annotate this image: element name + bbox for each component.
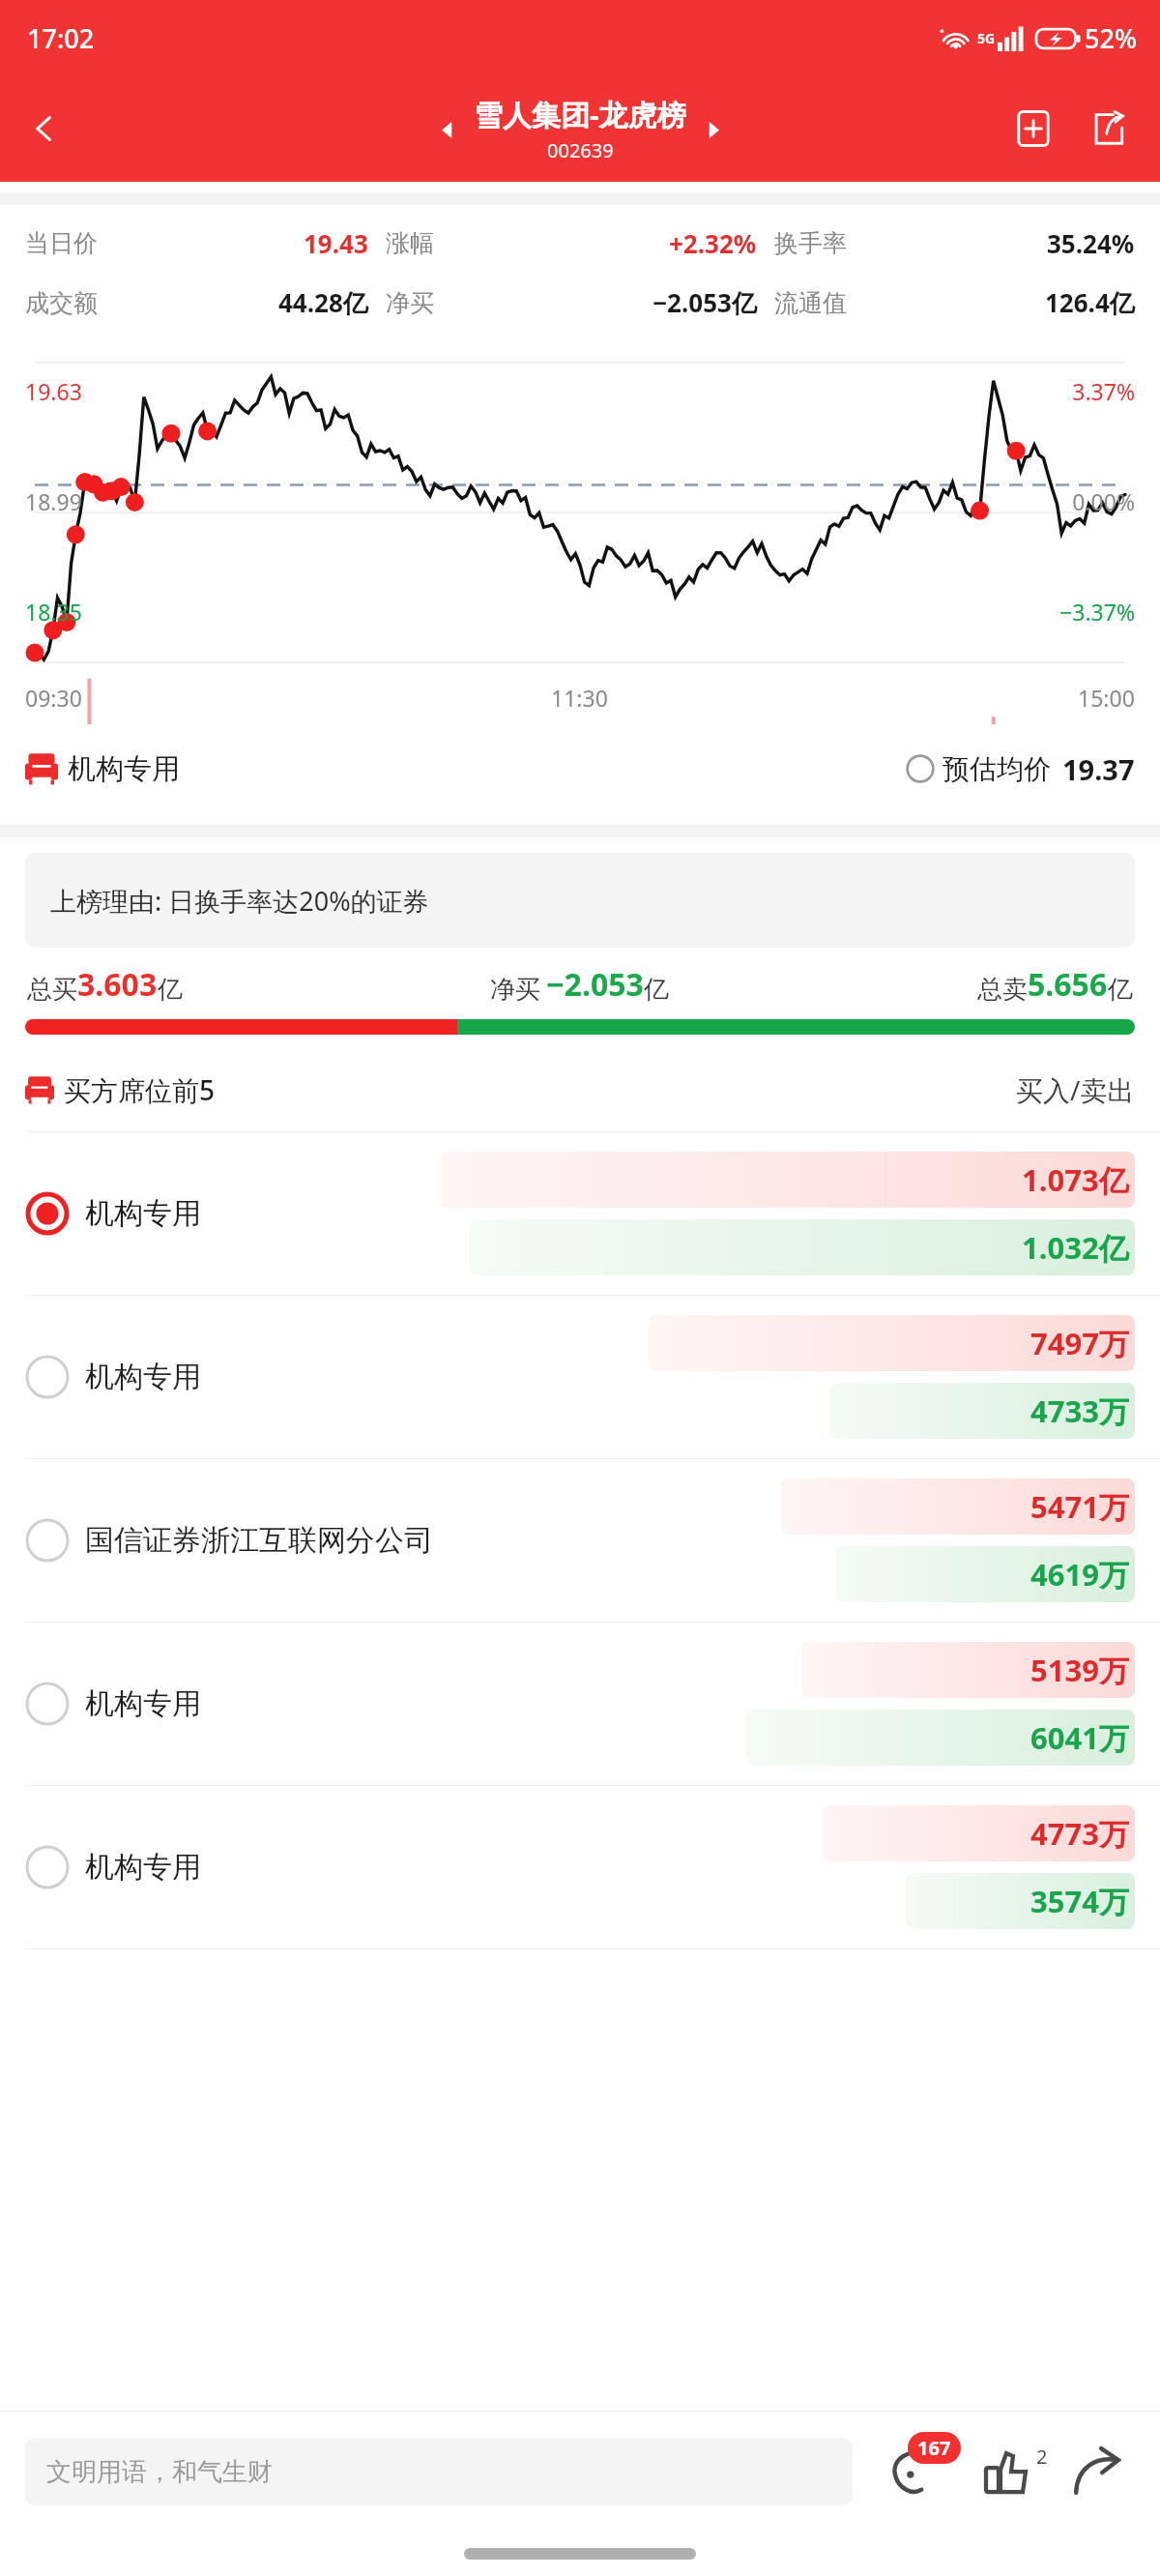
- staticText: 净买: [490, 974, 540, 1006]
- staticText: 1.073亿: [1022, 1159, 1129, 1200]
- staticText: 机构专用: [85, 1195, 201, 1232]
- staticText: 机构专用: [85, 1359, 201, 1395]
- staticText: 3.603: [77, 963, 158, 1006]
- staticText: −2.053: [546, 963, 644, 1006]
- button[interactable]: Share: [1079, 99, 1139, 159]
- staticText: 净买: [386, 288, 434, 318]
- staticText: 167: [917, 2435, 951, 2461]
- button[interactable]: Share: [1059, 2434, 1135, 2509]
- staticText: +2.32%: [669, 226, 757, 260]
- staticText: 文明用语，和气生财: [46, 2456, 273, 2488]
- staticText: 0.00%: [1072, 486, 1135, 516]
- staticText: 17:02: [27, 20, 95, 56]
- staticText: 5471万: [1030, 1486, 1129, 1527]
- staticText: 涨幅: [386, 228, 434, 258]
- button[interactable]: 机构专用: [0, 1132, 1160, 1295]
- staticText: 19.63: [25, 376, 82, 406]
- staticText: 4733万: [1030, 1390, 1129, 1431]
- staticText: 2: [1036, 2444, 1048, 2470]
- button[interactable]: 机构专用: [0, 1786, 1160, 1948]
- staticText: 上榜理由: 日换手率达20%的证券: [50, 883, 429, 919]
- staticText: 亿: [644, 974, 669, 1006]
- staticText: 002639: [547, 137, 614, 163]
- staticText: 换手率: [774, 228, 847, 258]
- button[interactable]: 文明用语，和气生财: [25, 2438, 853, 2505]
- staticText: 亿: [1108, 974, 1133, 1006]
- staticText: −3.37%: [1059, 597, 1135, 627]
- button[interactable]: 机构专用: [0, 1296, 1160, 1458]
- staticText: 126.4亿: [1045, 285, 1135, 320]
- staticText: 44.28亿: [278, 285, 368, 320]
- staticText: 5.656: [1028, 963, 1108, 1006]
- staticText: 机构专用: [68, 751, 180, 787]
- staticText: 总卖: [977, 974, 1028, 1006]
- staticText: 6041万: [1030, 1717, 1129, 1758]
- staticText: 52%: [1085, 20, 1137, 56]
- staticText: 当日价: [25, 228, 98, 258]
- staticText: 成交额: [25, 288, 98, 318]
- staticText: 亿: [158, 974, 183, 1006]
- button[interactable]: Comments: [878, 2434, 953, 2509]
- button[interactable]: 机构专用: [0, 1623, 1160, 1785]
- staticText: −2.053亿: [652, 285, 757, 320]
- staticText: 09:30: [25, 683, 82, 713]
- staticText: 流通值: [774, 288, 847, 318]
- staticText: 机构专用: [85, 1685, 201, 1722]
- button[interactable]: 上榜理由: 日换手率达20%的证券: [25, 853, 1135, 948]
- button[interactable]: 国信证券浙江互联网分公司: [0, 1459, 1160, 1622]
- button[interactable]: 机构专用: [25, 724, 1135, 813]
- staticText: 买方席位前5: [64, 1071, 216, 1108]
- staticText: 11:30: [551, 683, 608, 713]
- staticText: 5G: [977, 29, 996, 47]
- staticText: 18.99: [25, 486, 82, 516]
- staticText: 预估均价: [942, 752, 1051, 786]
- staticText: 机构专用: [85, 1849, 201, 1886]
- staticText: 7497万: [1030, 1323, 1129, 1363]
- staticText: 3574万: [1030, 1881, 1129, 1921]
- staticText: 18.35: [25, 597, 82, 627]
- staticText: 15:00: [1078, 683, 1135, 713]
- staticText: 4773万: [1030, 1813, 1129, 1854]
- staticText: 35.24%: [1047, 226, 1135, 260]
- staticText: 1.032亿: [1022, 1227, 1129, 1268]
- staticText: 总买: [27, 974, 77, 1006]
- staticText: 雪人集团-龙虎榜: [474, 95, 686, 134]
- staticText: 国信证券浙江互联网分公司: [85, 1522, 433, 1559]
- button[interactable]: Add to watchlist: [1003, 99, 1063, 159]
- button[interactable]: Like: [971, 2434, 1046, 2509]
- staticText: 4619万: [1030, 1554, 1129, 1595]
- staticText: 3.37%: [1072, 376, 1135, 406]
- staticText: 19.37: [1062, 750, 1135, 788]
- button[interactable]: Next stock: [696, 113, 729, 146]
- staticText: 5139万: [1030, 1650, 1129, 1690]
- button[interactable]: Previous stock: [431, 113, 464, 146]
- button[interactable]: Back: [14, 98, 75, 160]
- staticText: 19.43: [304, 226, 368, 260]
- staticText: 买入/卖出: [1016, 1071, 1135, 1108]
